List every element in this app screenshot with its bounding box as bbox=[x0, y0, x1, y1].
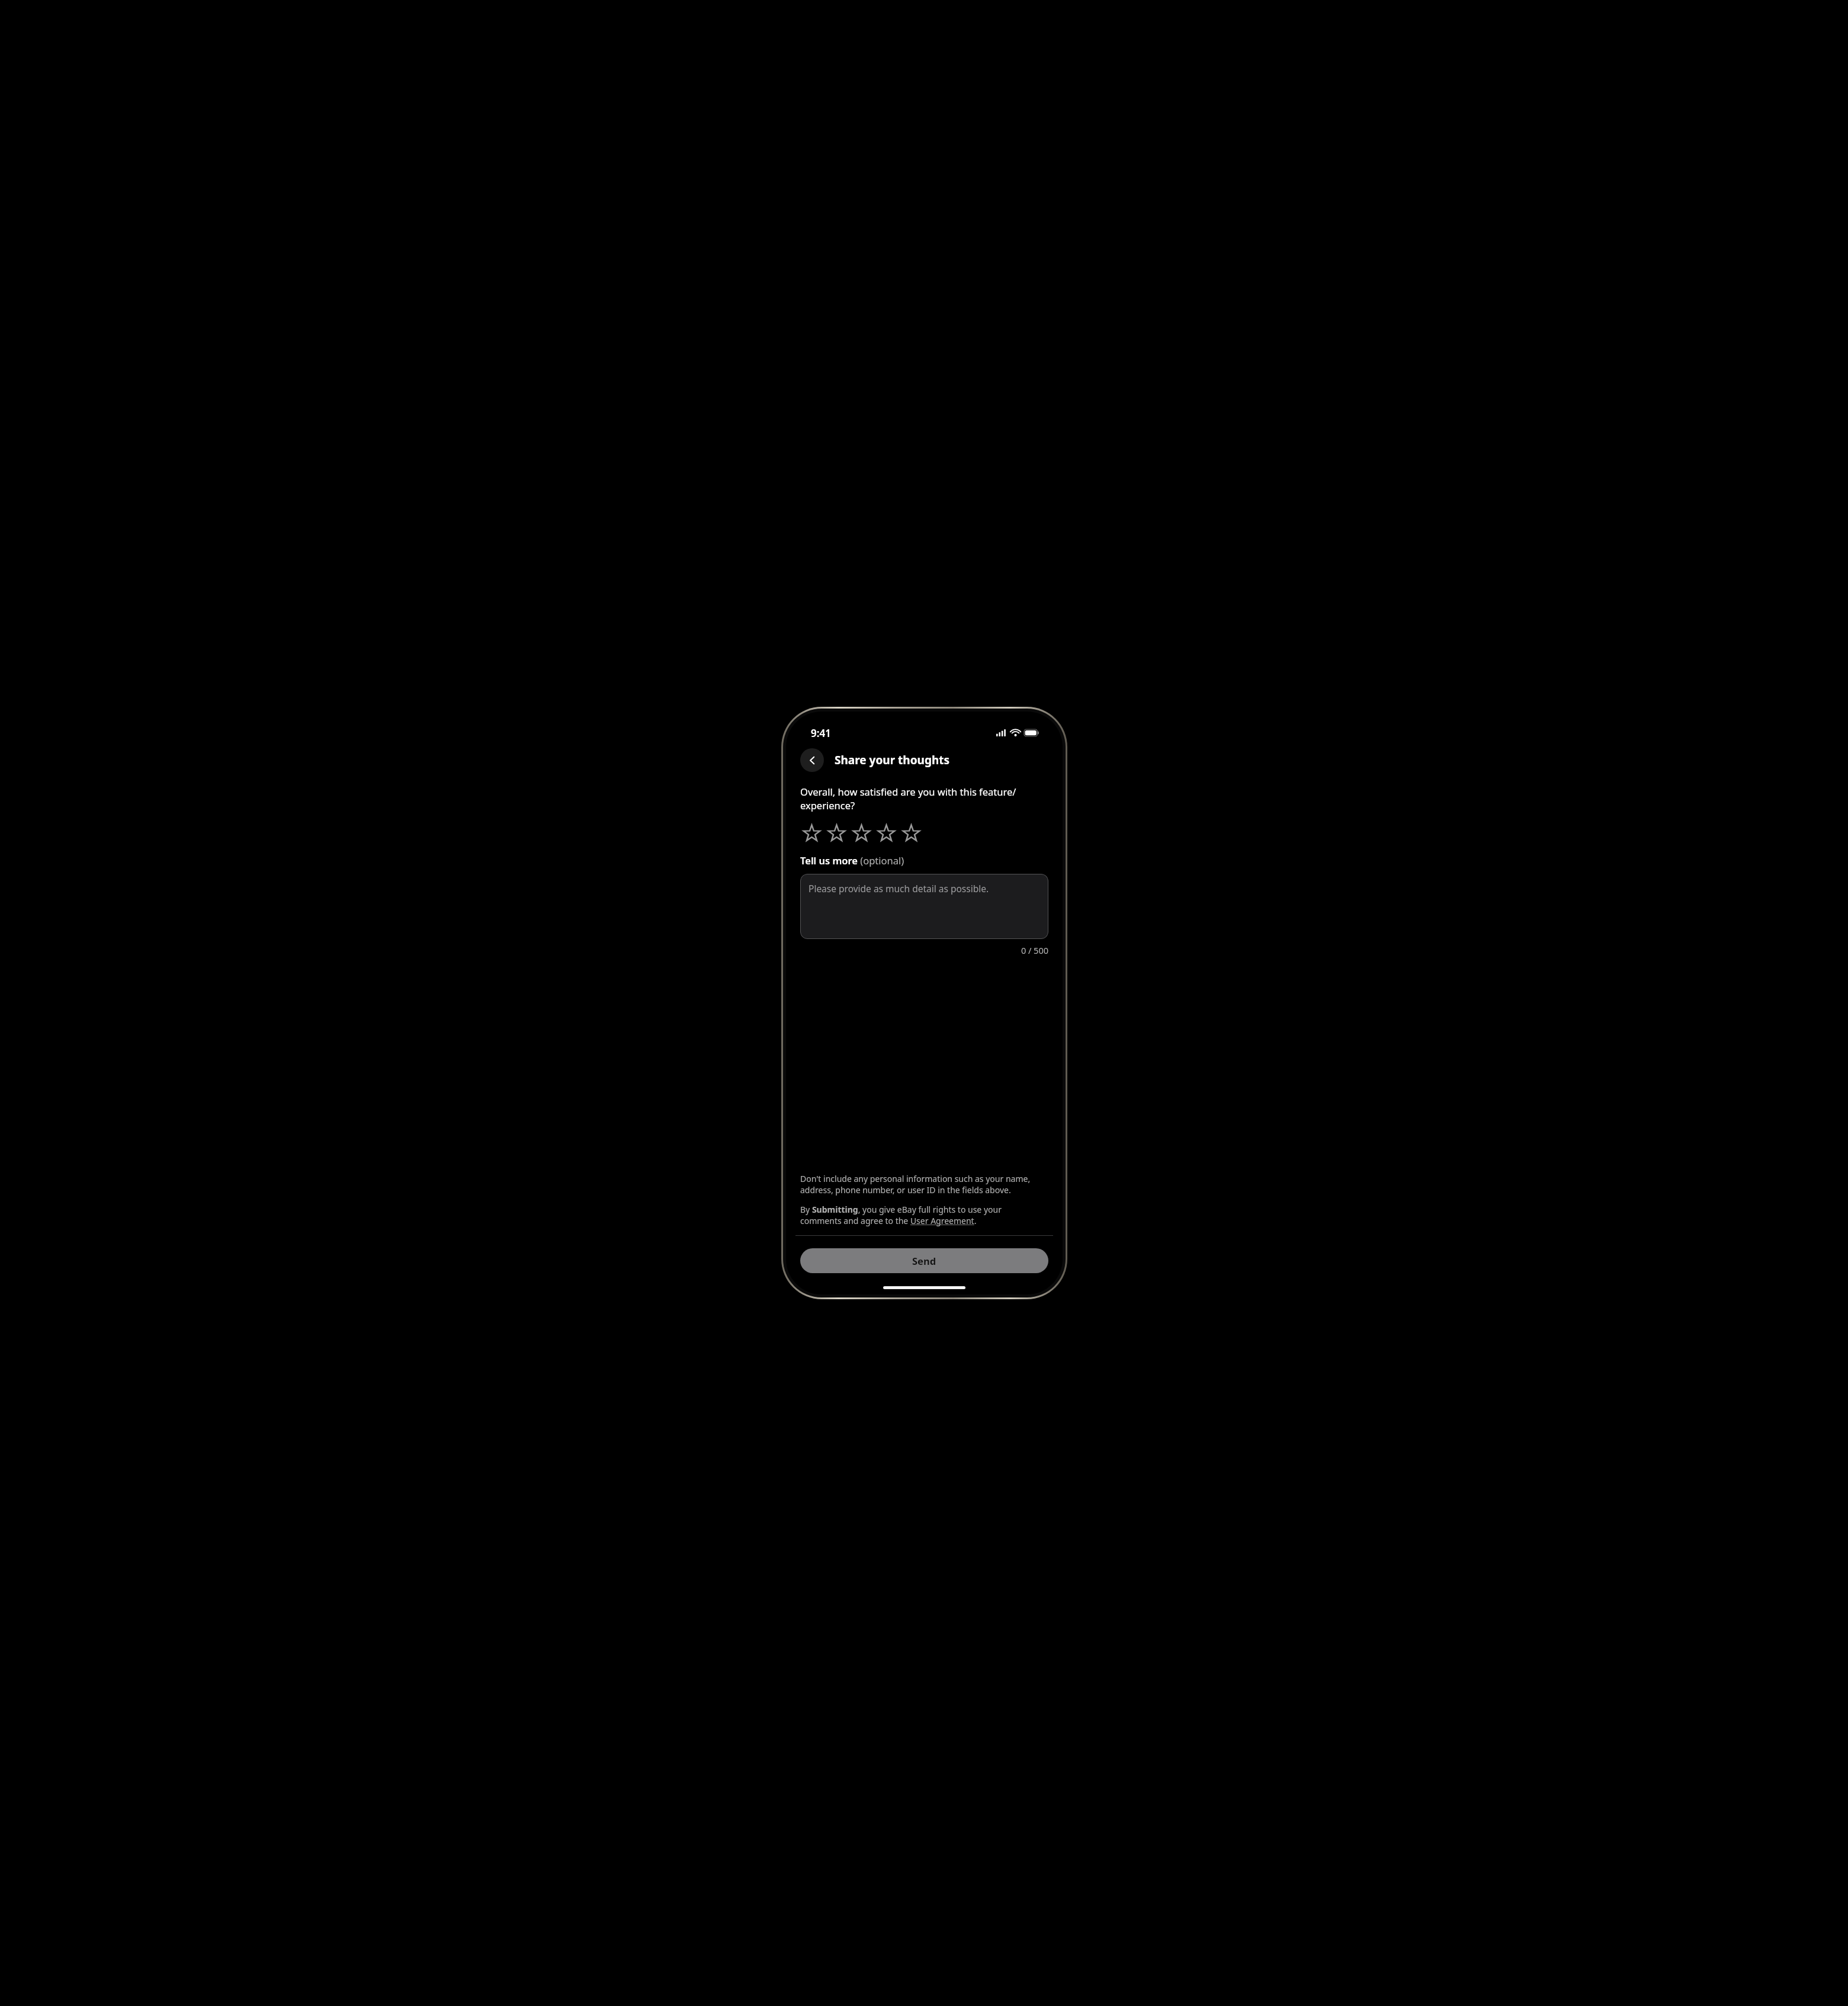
button[interactable]: By Submitting, you give eBay full rights… bbox=[800, 1204, 1002, 1226]
button[interactable]: Rate 1 star bbox=[799, 821, 824, 845]
staticText: Send bbox=[912, 1254, 936, 1267]
button[interactable]: Rate 2 star bbox=[824, 821, 849, 845]
button[interactable]: Send bbox=[800, 1248, 1048, 1273]
staticText: 9:41 bbox=[811, 726, 831, 740]
button[interactable]: Rate 3 star bbox=[849, 821, 874, 845]
button[interactable]: Back bbox=[800, 748, 824, 772]
staticText: 0 / 500 bbox=[786, 944, 1048, 956]
staticText: Overall, how satisfied are you with this… bbox=[800, 785, 1016, 812]
button[interactable]: Rate 4 star bbox=[874, 821, 899, 845]
staticText: Tell us more (optional) bbox=[800, 854, 904, 867]
button[interactable]: Rate 5 star bbox=[899, 821, 923, 845]
staticText: Share your thoughts bbox=[835, 752, 950, 768]
staticText: Don't include any personal information s… bbox=[800, 1173, 1031, 1196]
button[interactable]: Please provide as much detail as possibl… bbox=[800, 874, 1048, 939]
staticText: Please provide as much detail as possibl… bbox=[808, 882, 989, 895]
